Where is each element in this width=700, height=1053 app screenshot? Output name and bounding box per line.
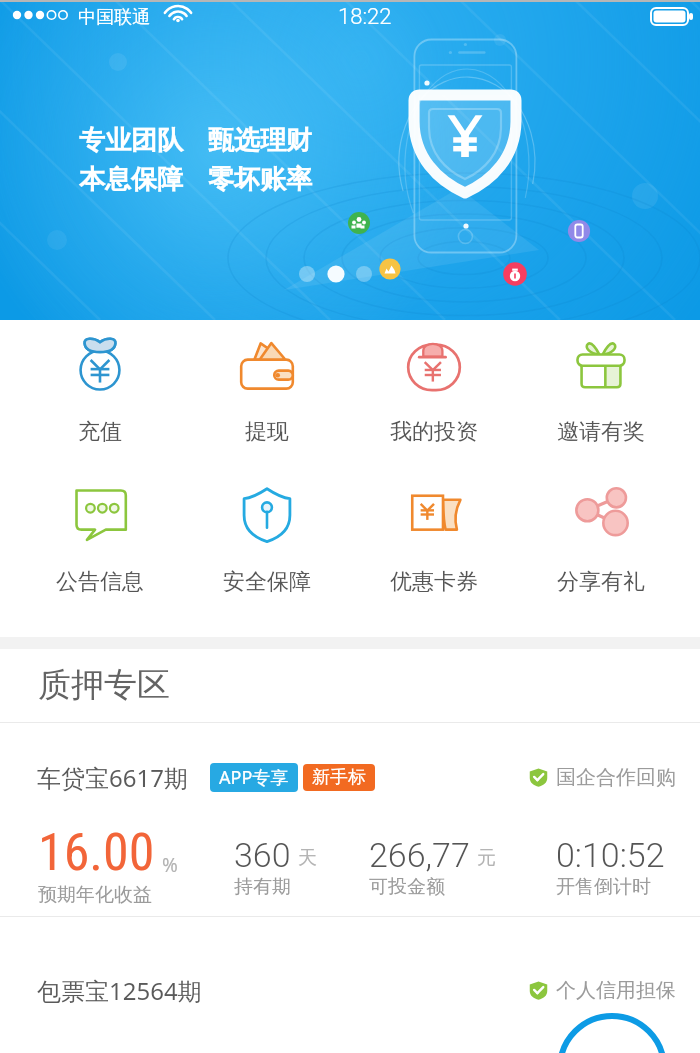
button[interactable]: 安全保障 bbox=[183, 484, 350, 596]
staticText: 质押专区 bbox=[38, 664, 170, 706]
staticText: 充值 bbox=[78, 418, 122, 446]
staticText: 18:22 bbox=[338, 4, 392, 30]
staticText: 国企合作回购 bbox=[556, 765, 676, 790]
button[interactable]: 包票宝12564期 bbox=[0, 917, 700, 1053]
staticText: 360 bbox=[234, 835, 291, 875]
staticText: 元 bbox=[477, 846, 496, 870]
button[interactable]: 优惠卡券 bbox=[350, 484, 517, 596]
staticText: APP专享 bbox=[219, 765, 289, 790]
button[interactable]: 充值 bbox=[16, 334, 183, 446]
staticText: % bbox=[162, 852, 178, 878]
staticText: 天 bbox=[298, 846, 317, 870]
staticText: 16.00 bbox=[38, 822, 155, 883]
staticText: 开售倒计时 bbox=[556, 875, 651, 899]
staticText: 优惠卡券 bbox=[390, 568, 478, 596]
staticText: 266,77 bbox=[369, 835, 470, 875]
staticText: 零坏账率 bbox=[208, 163, 312, 196]
staticText: 我的投资 bbox=[390, 418, 478, 446]
button[interactable]: 新手标 bbox=[312, 766, 366, 789]
staticText: 专业团队 bbox=[79, 124, 183, 157]
staticText: 分享有礼 bbox=[557, 568, 645, 596]
staticText: 中国联通 bbox=[78, 6, 150, 29]
staticText: 车贷宝6617期 bbox=[37, 761, 188, 794]
staticText: 甄选理财 bbox=[208, 124, 312, 157]
staticText: 持有期 bbox=[234, 875, 291, 899]
staticText: 0:10:52 bbox=[556, 835, 665, 875]
button[interactable]: 邀请有奖 bbox=[517, 334, 684, 446]
button[interactable]: APP专享 bbox=[219, 765, 289, 790]
staticText: 个人信用担保 bbox=[556, 978, 676, 1003]
staticText: 包票宝12564期 bbox=[37, 974, 202, 1007]
staticText: 邀请有奖 bbox=[557, 418, 645, 446]
button[interactable]: 我的投资 bbox=[350, 334, 517, 446]
staticText: 安全保障 bbox=[223, 568, 311, 596]
staticText: 本息保障 bbox=[79, 163, 183, 196]
button[interactable]: 公告信息 bbox=[16, 484, 183, 596]
button[interactable]: 提现 bbox=[183, 334, 350, 446]
staticText: 公告信息 bbox=[56, 568, 144, 596]
staticText: 新手标 bbox=[312, 766, 366, 789]
button[interactable]: 分享有礼 bbox=[517, 484, 684, 596]
staticText: 可投金额 bbox=[369, 875, 445, 899]
staticText: 提现 bbox=[245, 418, 289, 446]
staticText: 预期年化收益 bbox=[38, 883, 152, 907]
button[interactable]: 车贷宝6617期 bbox=[0, 723, 700, 916]
